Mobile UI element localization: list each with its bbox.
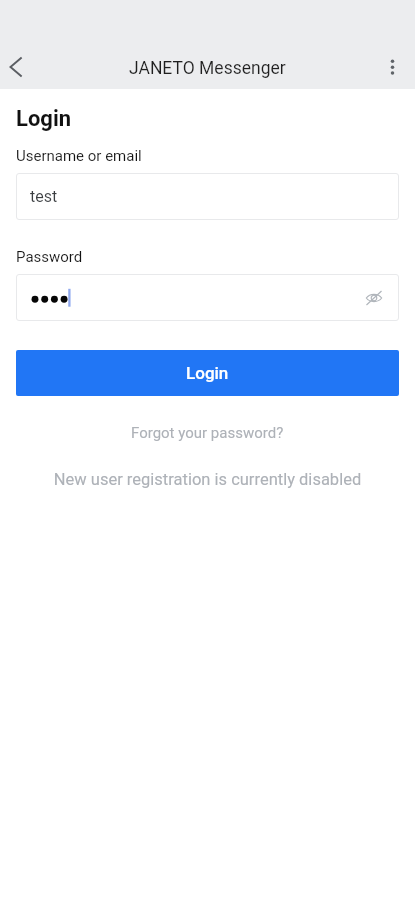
staticText: Password	[16, 248, 83, 266]
staticText: Login	[186, 363, 229, 383]
button[interactable]: More options	[368, 43, 415, 91]
staticText: Username or email	[16, 147, 142, 165]
staticText: Forgot your password?	[131, 424, 284, 442]
staticText: test	[30, 187, 58, 206]
button[interactable]: Show password	[356, 280, 392, 316]
button[interactable]: Back	[0, 43, 40, 91]
staticText: Login	[16, 106, 72, 132]
button[interactable]: Forgot your password?	[16, 424, 399, 442]
staticText: New user registration is currently disab…	[16, 470, 399, 489]
button[interactable]: test	[16, 173, 399, 220]
button[interactable]: Show password	[16, 274, 399, 321]
staticText: JANETO Messenger	[129, 58, 286, 79]
button[interactable]: Login	[16, 350, 399, 396]
